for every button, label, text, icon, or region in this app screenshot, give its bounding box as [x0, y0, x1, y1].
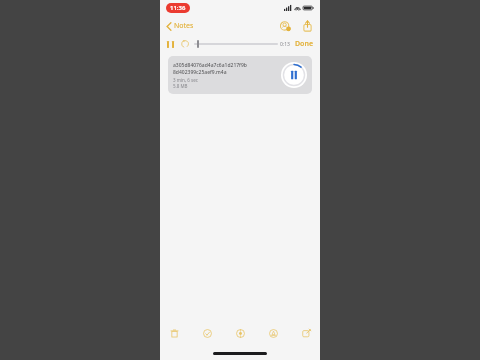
- staticText: 5.8 MB: [173, 83, 188, 89]
- staticText: Notes: [174, 21, 194, 31]
- button[interactable]: Markup: [265, 325, 281, 341]
- button[interactable]: Notes: [164, 19, 196, 33]
- staticText: Done: [295, 39, 314, 49]
- button[interactable]: Share: [300, 19, 314, 33]
- staticText: a305d84076ad4a7c6a1d217f9b: [173, 62, 247, 69]
- button[interactable]: Delete: [166, 325, 182, 341]
- staticText: 11:36: [170, 4, 186, 12]
- button[interactable]: a305d84076ad4a7c6a1d217f9b: [168, 56, 312, 94]
- staticText: 3 min, 6 sec: [173, 77, 198, 83]
- button[interactable]: Checklist: [199, 325, 215, 341]
- button[interactable]: Pause audio: [281, 62, 307, 88]
- button[interactable]: Camera: [232, 325, 248, 341]
- button[interactable]: Done: [293, 38, 316, 50]
- button[interactable]: New note: [298, 325, 314, 341]
- button[interactable]: Pause: [164, 38, 176, 50]
- button[interactable]: Skip back 15 seconds: [179, 38, 191, 50]
- staticText: 8d402399c25aef9.m4a: [173, 69, 227, 76]
- button[interactable]: Collaborate: [278, 19, 292, 33]
- staticText: 0:13: [280, 41, 290, 48]
